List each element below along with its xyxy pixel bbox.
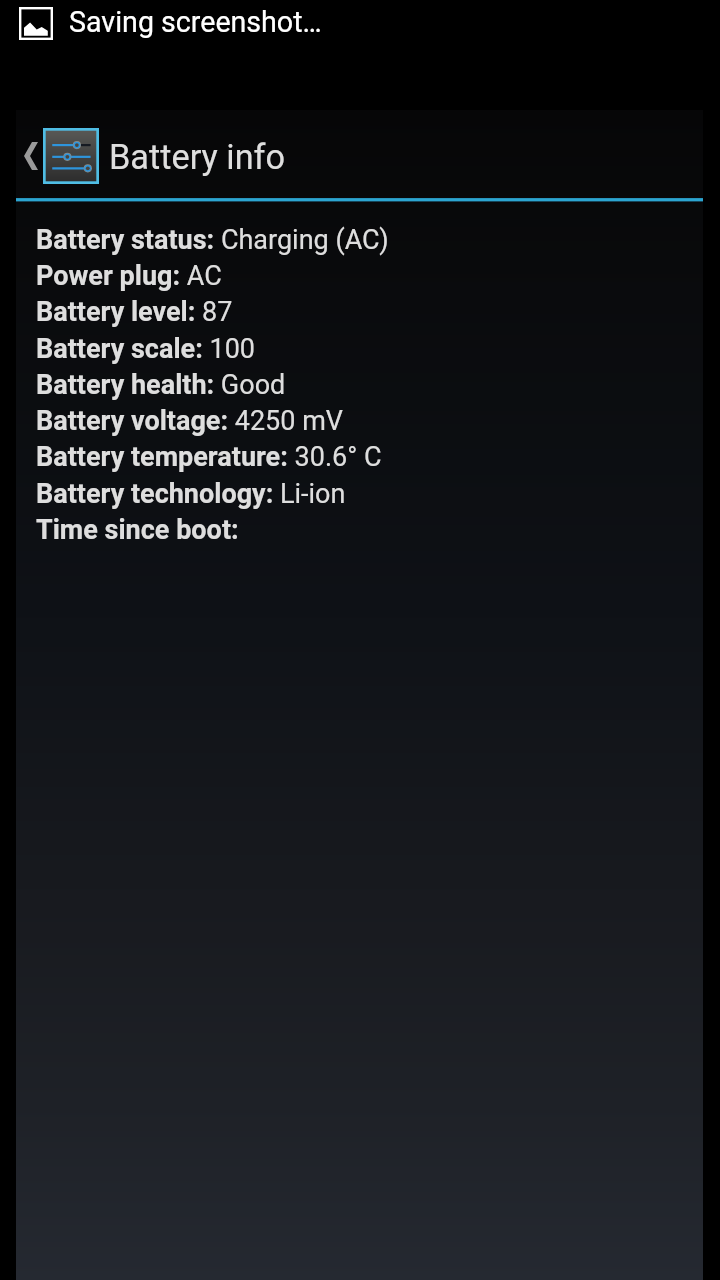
staticText: Battery scale: 100 (36, 333, 720, 365)
other: App icon (43, 128, 99, 184)
staticText: Saving screenshot… (69, 5, 322, 39)
other: Screenshot (19, 7, 53, 40)
staticText: Battery technology: Li-ion (36, 478, 720, 510)
button[interactable]: Navigate up (16, 110, 298, 198)
staticText: Time since boot: (36, 514, 720, 546)
staticText: Battery status: Charging (AC) (36, 224, 720, 256)
staticText: Battery level: 87 (36, 296, 720, 328)
other: Back (24, 142, 38, 170)
button[interactable]: Screenshot (0, 0, 720, 48)
staticText: Battery voltage: 4250 mV (36, 405, 720, 437)
staticText: Battery info (109, 137, 286, 177)
staticText: Battery temperature: 30.6° C (36, 441, 720, 473)
staticText: Battery health: Good (36, 369, 720, 401)
staticText: Power plug: AC (36, 260, 720, 292)
